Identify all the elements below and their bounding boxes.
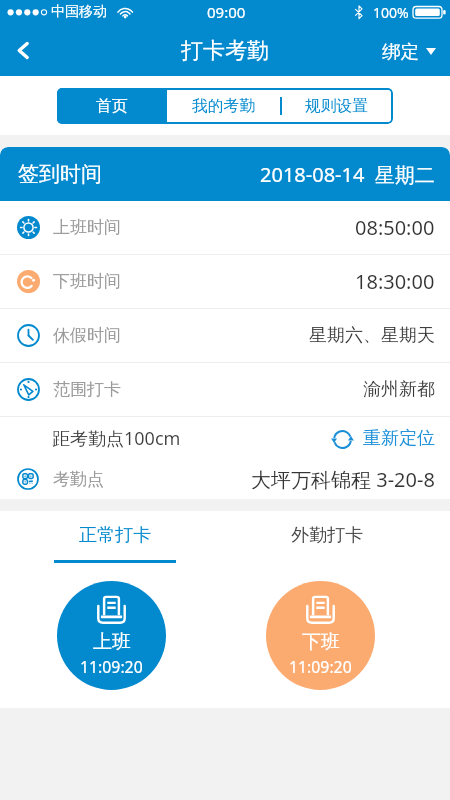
- staticText: 打卡考勤: [181, 37, 269, 65]
- button[interactable]: 规则设置: [280, 88, 393, 124]
- staticText: 上班: [93, 630, 131, 654]
- staticText: 正常打卡: [79, 524, 151, 547]
- button[interactable]: 上班时间: [0, 201, 450, 254]
- staticText: 考勤点: [53, 469, 104, 490]
- button[interactable]: 外勤打卡: [266, 511, 388, 563]
- staticText: 08:50:00: [355, 214, 435, 241]
- staticText: 中国移动: [51, 3, 107, 21]
- staticText: 09:00: [207, 2, 246, 22]
- button[interactable]: 首页: [57, 88, 167, 124]
- staticText: 我的考勤: [192, 96, 256, 116]
- staticText: 重新定位: [363, 427, 435, 450]
- button[interactable]: 下班: [266, 581, 375, 690]
- button[interactable]: 休假时间: [0, 309, 450, 362]
- staticText: 规则设置: [305, 96, 369, 116]
- button[interactable]: 我的考勤: [167, 88, 280, 124]
- staticText: 首页: [96, 96, 128, 116]
- button[interactable]: 下班时间: [0, 255, 450, 308]
- staticText: 距考勤点100cm: [52, 426, 181, 451]
- staticText: 100%: [373, 3, 409, 22]
- button[interactable]: 范围打卡: [0, 363, 450, 416]
- staticText: 11:09:20: [80, 656, 143, 678]
- staticText: 休假时间: [53, 325, 121, 346]
- staticText: 上班时间: [53, 217, 121, 238]
- staticText: 星期六、星期天: [309, 324, 435, 347]
- staticText: 大坪万科锦程 3-20-8: [251, 466, 435, 493]
- staticText: 11:09:20: [289, 656, 352, 678]
- button[interactable]: 上班: [57, 581, 166, 690]
- staticText: 签到时间: [18, 161, 102, 187]
- staticText: 下班时间: [53, 271, 121, 292]
- staticText: 外勤打卡: [291, 524, 363, 547]
- button[interactable]: 绑定: [382, 40, 436, 63]
- staticText: 范围打卡: [53, 379, 121, 400]
- button[interactable]: 重新定位: [333, 427, 435, 450]
- staticText: 渝州新都: [363, 378, 435, 401]
- staticText: 2018-08-14 星期二: [260, 161, 435, 188]
- staticText: 下班: [302, 630, 340, 654]
- staticText: 18:30:00: [355, 268, 435, 295]
- button[interactable]: Back: [0, 26, 50, 76]
- staticText: 绑定: [382, 40, 419, 63]
- button[interactable]: 正常打卡: [54, 511, 176, 563]
